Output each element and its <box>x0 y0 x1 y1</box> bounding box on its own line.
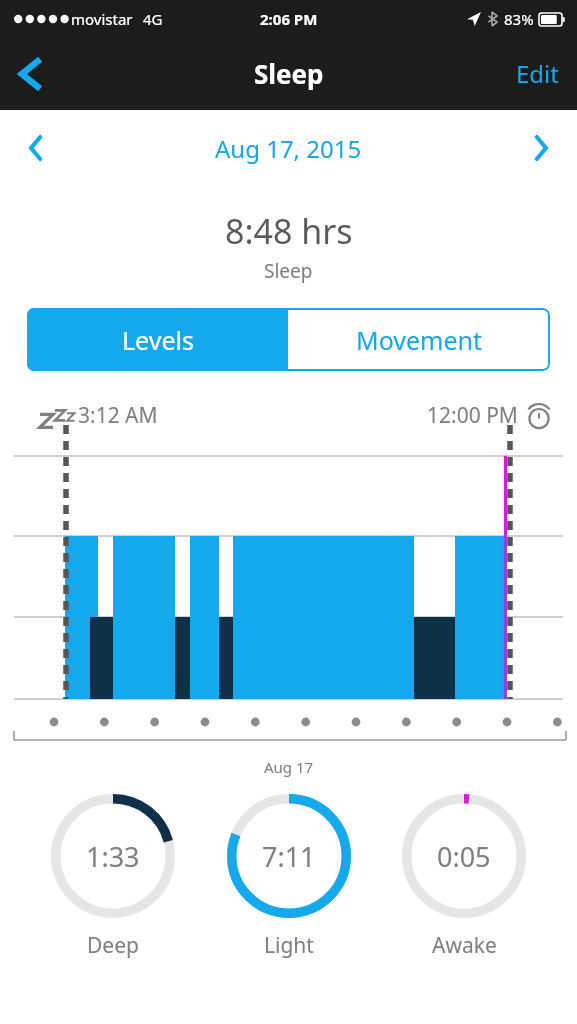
staticText: Movement <box>356 323 483 357</box>
button[interactable]: Movement <box>288 308 550 371</box>
staticText: 2:06 PM <box>260 9 318 29</box>
staticText: Awake <box>432 931 497 960</box>
button[interactable]: Next day <box>517 124 565 172</box>
staticText: Sleep <box>254 56 324 91</box>
staticText: 3:12 AM <box>78 401 158 430</box>
button[interactable]: Aug 17, 2015 <box>207 124 370 173</box>
staticText: Aug 17, 2015 <box>215 132 362 165</box>
staticText: 1:33 <box>86 838 140 875</box>
staticText: 0:05 <box>437 838 491 875</box>
button[interactable]: Previous day <box>12 124 60 172</box>
staticText: Edit <box>516 57 559 90</box>
button[interactable]: Edit <box>498 45 577 102</box>
staticText: Aug 17 <box>0 757 577 777</box>
staticText: Deep <box>87 931 139 960</box>
button[interactable]: Levels <box>27 308 288 371</box>
staticText: 12:00 PM <box>427 401 518 430</box>
staticText: Sleep <box>264 258 313 284</box>
staticText: 8:48 hrs <box>225 208 353 254</box>
button[interactable]: Back <box>6 50 54 98</box>
staticText: Levels <box>122 323 194 357</box>
staticText: movistar <box>71 9 133 29</box>
staticText: Light <box>264 931 314 960</box>
staticText: 83% <box>504 9 534 29</box>
staticText: 7:11 <box>262 838 316 875</box>
staticText: 4G <box>143 9 163 29</box>
